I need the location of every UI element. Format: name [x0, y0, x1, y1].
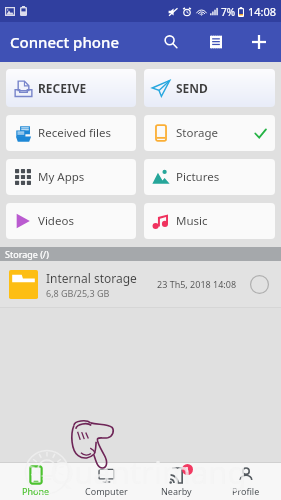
button[interactable]: RECEIVE: [6, 69, 136, 107]
button[interactable]: 1: [141, 463, 211, 500]
staticText: SEND: [176, 80, 208, 96]
staticText: RECEIVE: [38, 80, 87, 96]
staticText: 7%: [221, 5, 236, 19]
staticText: Storage (/): [5, 248, 49, 260]
staticText: Profile: [232, 485, 260, 497]
button[interactable]: Profile: [211, 463, 281, 500]
staticText: Music: [176, 213, 208, 229]
staticText: Videos: [38, 213, 74, 229]
staticText: 1: [185, 465, 190, 475]
button[interactable]: Computer: [71, 463, 141, 500]
staticText: Computer: [85, 485, 128, 497]
staticText: Connect phone: [10, 32, 120, 52]
button[interactable]: Internal storage: [0, 261, 281, 308]
staticText: Pictures: [176, 169, 220, 185]
button[interactable]: Transfer history: [193, 22, 238, 62]
button[interactable]: Add: [238, 22, 280, 62]
button[interactable]: My Apps: [6, 159, 136, 195]
staticText: Quantrimang: [50, 451, 247, 493]
staticText: 14:08: [248, 4, 277, 19]
button[interactable]: Search: [149, 22, 193, 62]
button[interactable]: Phone: [0, 463, 71, 500]
staticText: Internal storage: [46, 270, 137, 286]
staticText: Received files: [38, 125, 111, 141]
staticText: 23 Th5, 2018 14:08: [157, 278, 237, 290]
button[interactable]: Videos: [6, 203, 136, 239]
staticText: 6,8 GB/25,3 GB: [46, 287, 110, 299]
button[interactable]: Received files: [6, 115, 136, 151]
button[interactable]: Storage: [144, 115, 275, 151]
staticText: Phone: [22, 485, 50, 497]
staticText: Storage: [176, 125, 218, 141]
button[interactable]: Pictures: [144, 159, 275, 195]
staticText: My Apps: [38, 169, 85, 185]
button[interactable]: SEND: [144, 69, 275, 107]
button[interactable]: Music: [144, 203, 275, 239]
staticText: Nearby: [161, 485, 192, 497]
